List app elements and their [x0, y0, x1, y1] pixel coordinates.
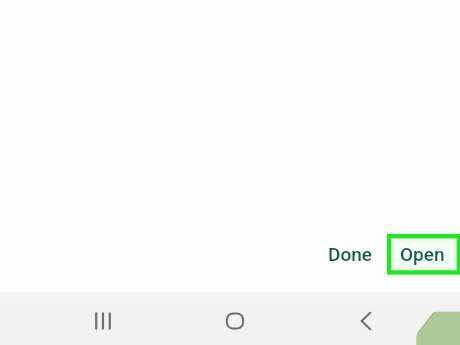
- button[interactable]: Recent apps: [79, 297, 127, 345]
- staticText: Done: [328, 243, 372, 265]
- button[interactable]: Home: [211, 297, 259, 345]
- staticText: Open: [400, 243, 445, 265]
- button[interactable]: Open: [386, 233, 458, 274]
- button[interactable]: Back: [342, 297, 390, 345]
- button[interactable]: Done: [313, 234, 386, 274]
